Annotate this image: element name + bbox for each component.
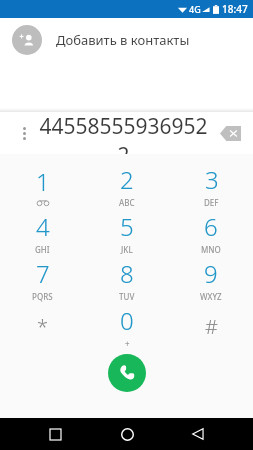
button[interactable]: Добавить в контакты [0, 18, 253, 62]
button[interactable]: Recents [39, 418, 71, 450]
button[interactable]: * [0, 303, 85, 350]
staticText: 8 [120, 257, 134, 290]
staticText: 6 [204, 210, 218, 243]
staticText: 1 [36, 165, 50, 198]
button[interactable]: 8 [85, 256, 169, 303]
staticText: JKL [121, 244, 133, 255]
staticText: MNO [201, 244, 221, 255]
staticText: 9 [204, 257, 218, 290]
staticText: Добавить в контакты [56, 31, 190, 49]
staticText: WXYZ [200, 291, 222, 302]
staticText: PQRS [32, 291, 53, 302]
button[interactable]: 2 [85, 162, 169, 209]
staticText: DEF [204, 197, 219, 208]
staticText: + [125, 338, 130, 349]
staticText: * [37, 313, 49, 340]
button[interactable]: # [169, 303, 253, 350]
button[interactable]: 0 [85, 303, 169, 350]
button[interactable]: 5 [85, 209, 169, 256]
button[interactable]: Back [182, 418, 214, 450]
button[interactable]: 3 [169, 162, 253, 209]
button[interactable]: Backspace [213, 116, 247, 150]
button[interactable]: 7 [0, 256, 85, 303]
staticText: 3 [205, 163, 219, 196]
staticText: 4 [36, 210, 50, 243]
staticText: 445585559369522 [34, 112, 213, 154]
staticText: # [205, 313, 218, 340]
staticText: 2 [120, 163, 134, 196]
button[interactable]: 1 [0, 162, 85, 209]
staticText: ABC [119, 197, 135, 208]
staticText: GHI [35, 244, 50, 255]
staticText: 4G [189, 3, 201, 15]
button[interactable]: 4 [0, 209, 85, 256]
staticText: 0 [120, 304, 134, 337]
staticText: 18:47 [222, 2, 248, 16]
button[interactable]: More options [14, 123, 34, 143]
button[interactable]: 6 [169, 209, 253, 256]
button[interactable]: Call [108, 354, 146, 392]
staticText: 7 [36, 257, 50, 290]
button[interactable]: Home [111, 418, 143, 450]
staticText: 5 [120, 210, 134, 243]
staticText: TUV [119, 291, 135, 302]
button[interactable]: 9 [169, 256, 253, 303]
